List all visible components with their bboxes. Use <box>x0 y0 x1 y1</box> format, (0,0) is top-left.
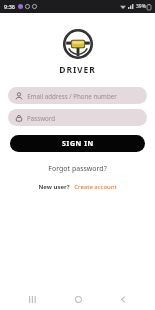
button[interactable]: Email address / Phone number <box>8 87 147 104</box>
staticText: 39% <box>136 3 146 10</box>
button[interactable]: SIGN IN <box>10 135 145 152</box>
staticText: DRIVER <box>59 64 96 76</box>
staticText: 9:36 <box>4 3 15 10</box>
staticText: New user? <box>38 183 70 191</box>
staticText: Email address / Phone number <box>27 92 117 100</box>
staticText: Forgot password? <box>48 164 107 174</box>
staticText: Create account <box>74 183 117 191</box>
button[interactable]: Back <box>110 288 136 310</box>
button[interactable]: Home <box>65 288 91 310</box>
button[interactable]: Create account <box>73 182 118 192</box>
staticText: Password <box>27 114 55 122</box>
button[interactable]: Password <box>8 109 147 126</box>
staticText: SIGN IN <box>62 139 94 149</box>
button[interactable]: Recents <box>19 288 45 310</box>
button[interactable]: Forgot password? <box>44 162 111 176</box>
